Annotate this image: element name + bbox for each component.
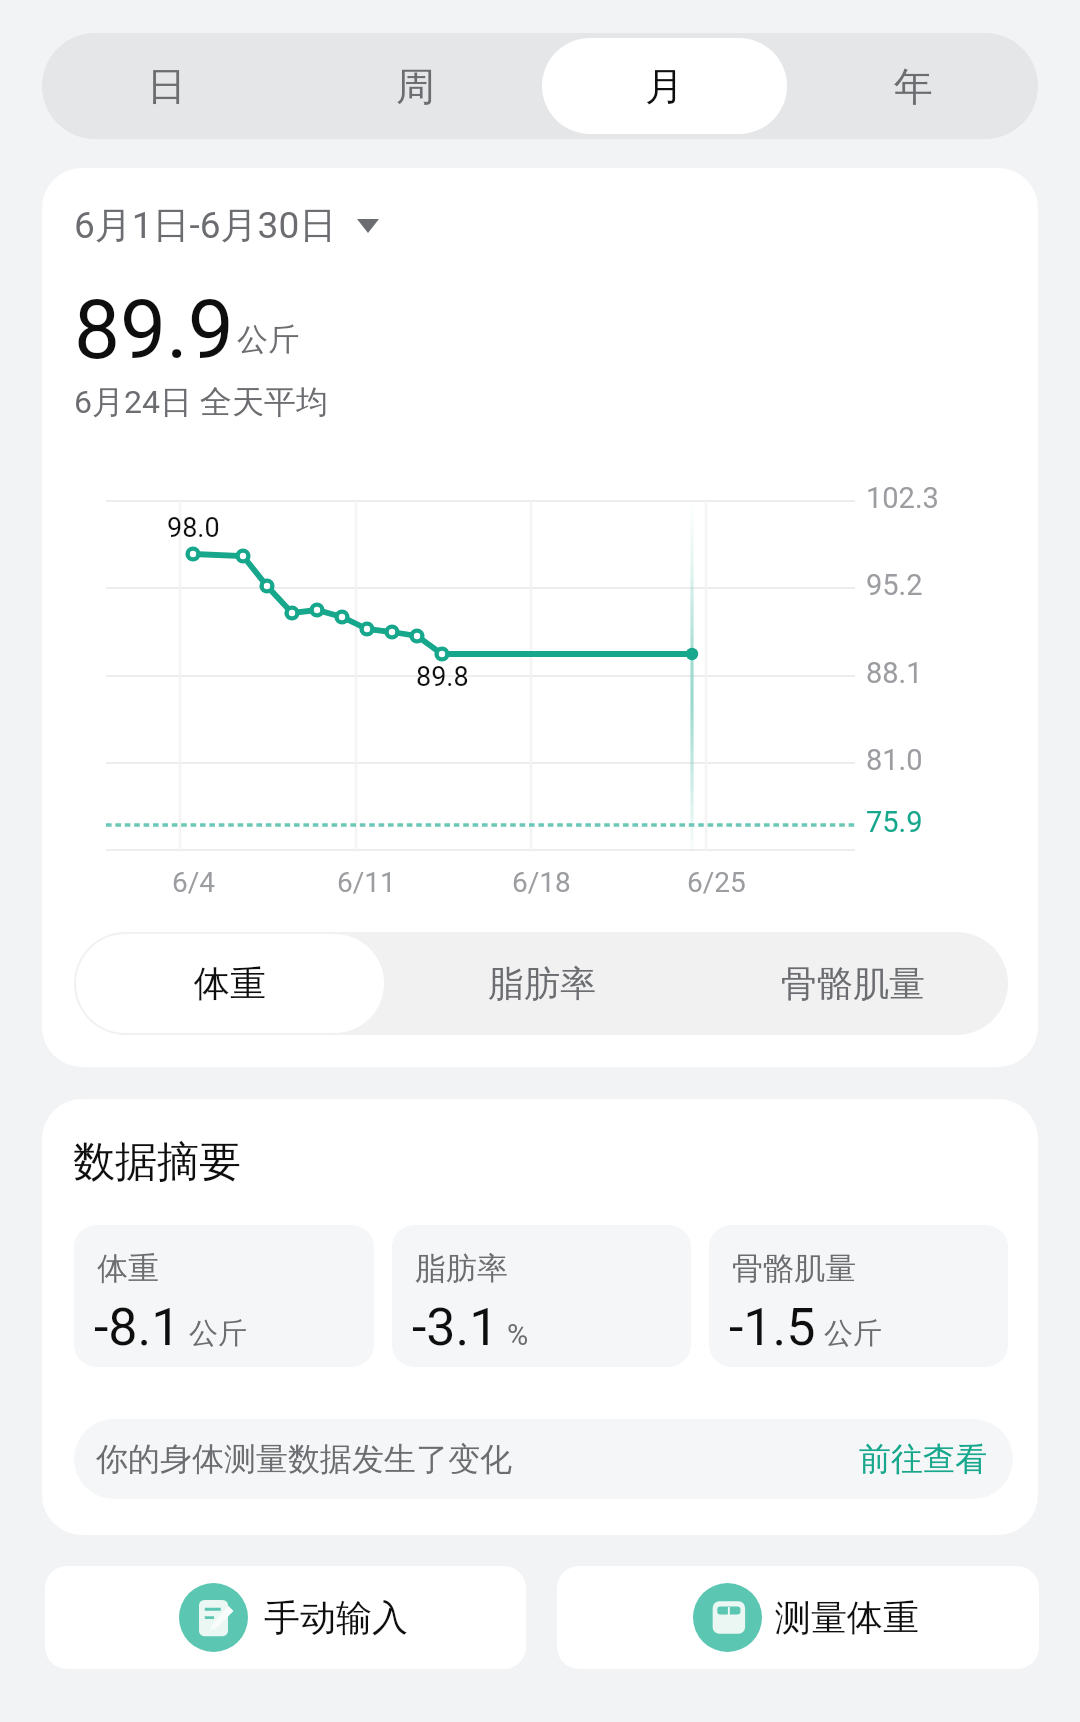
staticText: 脂肪率 bbox=[415, 1249, 508, 1288]
staticText: 6/11 bbox=[337, 866, 396, 899]
staticText: 6/18 bbox=[512, 866, 571, 899]
staticText: 89.9 bbox=[74, 282, 234, 378]
staticText: 体重 bbox=[194, 961, 266, 1006]
staticText: 数据摘要 bbox=[73, 1136, 241, 1189]
button[interactable]: 脂肪率 bbox=[388, 934, 695, 1033]
button[interactable]: 测量体重 bbox=[557, 1566, 1039, 1669]
button[interactable]: 年 bbox=[791, 38, 1036, 134]
staticText: 周 bbox=[396, 62, 435, 111]
staticText: 公斤 bbox=[237, 320, 299, 359]
button[interactable]: 骨骼肌量 bbox=[709, 1225, 1008, 1367]
staticText: 前往查看 bbox=[859, 1439, 987, 1479]
staticText: 6/25 bbox=[687, 866, 746, 899]
staticText: 年 bbox=[894, 62, 933, 111]
staticText: 手动输入 bbox=[264, 1595, 408, 1640]
staticText: 脂肪率 bbox=[488, 961, 596, 1006]
staticText: 102.3 bbox=[866, 481, 939, 515]
staticText: 测量体重 bbox=[775, 1595, 919, 1640]
staticText: 日 bbox=[147, 62, 186, 111]
staticText: 骨骼肌量 bbox=[732, 1249, 856, 1288]
staticText: 公斤 bbox=[189, 1315, 247, 1352]
staticText: 6月24日 全天平均 bbox=[74, 382, 328, 422]
button[interactable]: 骨骼肌量 bbox=[699, 934, 1006, 1033]
staticText: % bbox=[507, 1318, 529, 1352]
button[interactable]: 月 bbox=[542, 38, 787, 134]
staticText: -3.1 bbox=[412, 1297, 499, 1358]
staticText: 月 bbox=[645, 62, 684, 111]
staticText: 公斤 bbox=[824, 1315, 882, 1352]
other: 测量体重 bbox=[693, 1583, 762, 1652]
staticText: 98.0 bbox=[167, 512, 220, 544]
button[interactable]: 日 bbox=[44, 38, 289, 134]
button[interactable]: 手动输入 bbox=[45, 1566, 526, 1669]
staticText: 6月1日-6月30日 bbox=[74, 202, 337, 249]
button[interactable]: 周 bbox=[293, 38, 538, 134]
staticText: 89.8 bbox=[416, 661, 469, 693]
button[interactable]: 体重 bbox=[76, 934, 384, 1033]
button[interactable]: 脂肪率 bbox=[392, 1225, 691, 1367]
staticText: 骨骼肌量 bbox=[781, 961, 925, 1006]
staticText: 81.0 bbox=[866, 743, 923, 777]
staticText: -8.1 bbox=[94, 1297, 181, 1358]
staticText: -1.5 bbox=[729, 1297, 816, 1358]
button[interactable]: 你的身体测量数据发生了变化 bbox=[74, 1419, 1013, 1499]
staticText: 75.9 bbox=[866, 805, 923, 839]
staticText: 体重 bbox=[97, 1249, 159, 1288]
staticText: 95.2 bbox=[866, 568, 923, 602]
button[interactable]: 体重 bbox=[74, 1225, 374, 1367]
staticText: 你的身体测量数据发生了变化 bbox=[96, 1439, 512, 1479]
other: 手动输入 bbox=[179, 1583, 248, 1652]
button[interactable]: 6月1日-6月30日 bbox=[74, 196, 379, 255]
staticText: 6/4 bbox=[172, 866, 216, 899]
staticText: 88.1 bbox=[866, 656, 923, 690]
